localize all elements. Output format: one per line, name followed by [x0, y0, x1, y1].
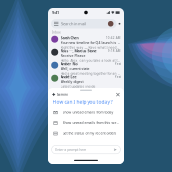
staticText: Receive Please	[61, 53, 86, 58]
staticText: Hello, Alex, can you take a look at the…	[61, 58, 121, 63]
staticText: Get the status of my recent orders	[63, 131, 117, 135]
staticText: How can I help you today?	[52, 99, 112, 105]
button[interactable]: Search in mail	[51, 19, 116, 28]
button[interactable]: Show unread emails from today	[48, 107, 124, 117]
staticText: 9:41	[52, 10, 59, 15]
staticText: Ross · ·, Marcus Stone	[61, 48, 97, 53]
staticText: Weekly digest	[61, 79, 84, 84]
button[interactable]: More options	[116, 19, 122, 28]
staticText: Right this way — Rave what I needed. Tal…	[61, 45, 121, 50]
staticText: Show unread emails from this week	[63, 120, 120, 125]
button[interactable]: Get the status of my recent orders	[48, 128, 124, 138]
staticText: Well, current state	[61, 66, 90, 71]
button[interactable]: Close	[115, 91, 121, 98]
button[interactable]: Ross · ·, Marcus Stone	[48, 49, 124, 62]
staticText: Sarah Chen	[61, 35, 79, 40]
staticText: Your new timeline for Q4 launch is re…	[61, 40, 121, 45]
staticText: Search in mail	[61, 21, 86, 26]
staticText: 10:42 AM	[106, 36, 121, 40]
staticText: Inbox	[52, 30, 61, 34]
button[interactable]: Enter a prompt here	[52, 145, 120, 154]
button[interactable]: Sarah Chen	[48, 36, 124, 49]
staticText: Latest updates inside	[61, 84, 96, 89]
button[interactable]: André Lee	[48, 75, 124, 88]
staticText: Gemini	[57, 92, 68, 97]
staticText: Yest	[115, 75, 121, 79]
staticText: Show unread emails from today	[63, 110, 114, 114]
button[interactable]: Amber Rio	[48, 62, 124, 75]
staticText: Amber Rio	[61, 61, 78, 66]
staticText: Yest	[115, 62, 121, 66]
staticText: Had a great meeting together for an unu…	[61, 71, 121, 76]
staticText: André Lee	[61, 74, 77, 79]
button[interactable]: Show unread emails from this week	[48, 117, 124, 128]
staticText: Enter a prompt here	[55, 147, 86, 152]
staticText: 9:18 AM	[108, 49, 121, 53]
